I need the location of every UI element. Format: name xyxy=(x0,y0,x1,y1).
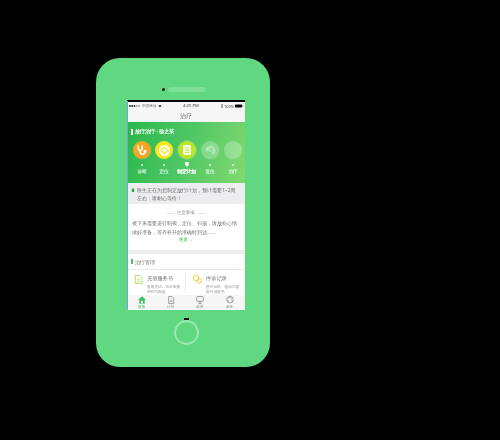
button[interactable]: 治疗 xyxy=(221,140,244,175)
button[interactable]: 诊断 xyxy=(131,140,153,175)
staticText: 定位 xyxy=(159,169,169,175)
staticText: 4:25 PM xyxy=(183,103,199,109)
button[interactable]: 停诊记录 xyxy=(186,270,245,295)
staticText: 中国移动 xyxy=(142,104,157,109)
staticText: 监测 xyxy=(196,305,204,310)
staticText: 治疗管理 xyxy=(135,259,155,265)
staticText: 制定计划 xyxy=(177,169,196,175)
button[interactable]: 制定计划 xyxy=(175,140,198,175)
button[interactable]: 充值服务书 xyxy=(127,270,185,295)
staticText: 100% xyxy=(224,104,234,109)
staticText: 诊断 xyxy=(137,169,147,175)
staticText: 计划 xyxy=(167,305,175,310)
staticText: 更多 xyxy=(179,237,188,243)
staticText: 注意事项 xyxy=(177,210,195,216)
button[interactable]: 首页 xyxy=(127,295,156,310)
staticText: 查看登记、充分掌握 用药气氛值 xyxy=(147,284,181,294)
staticText: 服务 xyxy=(226,305,234,310)
staticText: 停诊记录 xyxy=(206,275,227,282)
staticText: 接下来需要进行制模、定位、扫描，请放松心情做好准备，等齐科开始准确时到达…… xyxy=(132,220,241,235)
staticText: 复位 xyxy=(205,169,215,175)
staticText: 充值服务书 xyxy=(147,275,173,282)
button[interactable]: 计划 xyxy=(156,295,185,310)
button[interactable]: 定位 xyxy=(153,140,175,175)
button[interactable]: 更多 xyxy=(127,237,245,243)
staticText: 医疗记录、检体方面 医疗进展书 xyxy=(206,284,240,294)
staticText: 医生正在为您制定放疗计划，预计需要1~2周左右，请耐心等待！ xyxy=(137,187,240,202)
staticText: 治疗 xyxy=(228,169,238,175)
button[interactable]: 复位 xyxy=(198,140,221,175)
staticText: 治疗 xyxy=(180,112,192,120)
staticText: 放疗治疗 - 徐之某 xyxy=(135,128,175,135)
staticText: 首页 xyxy=(138,305,146,310)
button[interactable]: 监测 xyxy=(185,295,215,310)
button[interactable]: 服务 xyxy=(215,295,245,310)
